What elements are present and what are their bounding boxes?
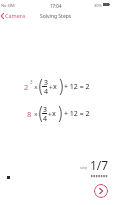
staticText: + 12 = 2 — [64, 82, 90, 92]
staticText: 3 — [43, 105, 48, 115]
staticText: 30% — [94, 3, 102, 8]
staticText: 3 — [44, 78, 49, 88]
staticText: Solving Steps — [40, 13, 72, 20]
staticText: step — [80, 165, 88, 170]
staticText: + — [48, 110, 52, 119]
staticText: Camera — [5, 12, 26, 19]
staticText: + — [49, 83, 53, 92]
button[interactable]: Next step — [94, 184, 108, 198]
staticText: 3 — [30, 79, 33, 85]
staticText: 8 — [27, 109, 32, 119]
staticText: x — [52, 109, 56, 119]
staticText: 1/7 — [90, 157, 109, 173]
staticText: 4 — [44, 87, 49, 97]
staticText: + 12 = 2 — [64, 109, 90, 119]
staticText: x — [53, 82, 57, 92]
staticText: × — [34, 110, 38, 119]
staticText: 2 — [24, 82, 29, 92]
staticText: 4 — [43, 114, 48, 124]
staticText: 17:04 — [50, 3, 62, 9]
button[interactable]: Camera — [1, 12, 26, 19]
staticText: × — [34, 83, 38, 92]
staticText: No SIM — [1, 3, 15, 8]
